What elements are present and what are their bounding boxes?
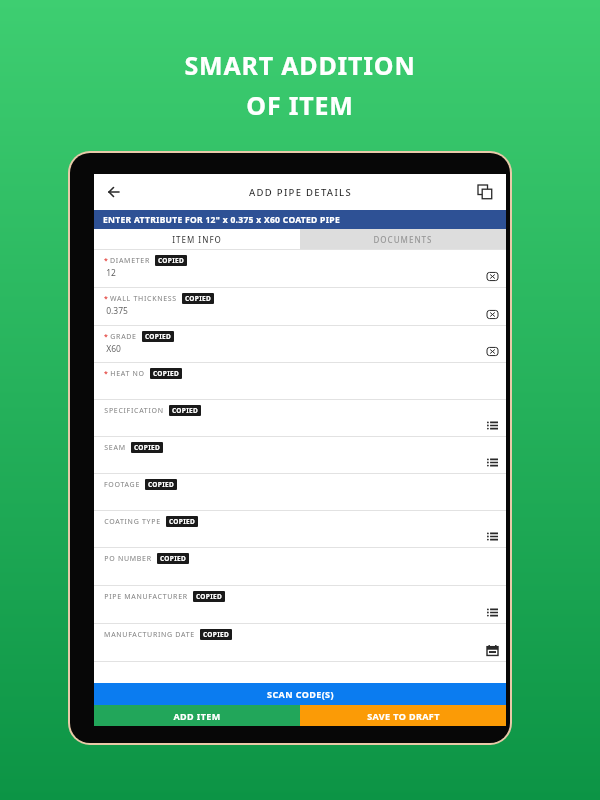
staticText: COPIED: [185, 294, 211, 303]
staticText: OF ITEM: [246, 88, 354, 122]
staticText: *: [104, 256, 108, 266]
other: Clear: [484, 306, 500, 322]
staticText: *: [104, 332, 108, 342]
other: Select: [484, 604, 500, 620]
staticText: COPIED: [148, 480, 174, 489]
other: Clear: [484, 343, 500, 359]
staticText: X60: [106, 343, 121, 355]
staticText: COPIED: [145, 332, 171, 341]
button[interactable]: ITEM INFO: [94, 229, 300, 249]
button[interactable]: *: [94, 363, 506, 400]
button[interactable]: FOOTAGE: [94, 474, 506, 511]
button[interactable]: SCAN CODE(S): [94, 683, 506, 705]
staticText: COPIED: [160, 554, 186, 563]
staticText: ADD PIPE DETAILS: [249, 186, 352, 199]
staticText: COATING TYPE: [104, 517, 161, 527]
button[interactable]: SPECIFICATION: [94, 400, 506, 437]
staticText: ADD ITEM: [173, 710, 221, 722]
button[interactable]: COATING TYPE: [94, 511, 506, 548]
staticText: MANUFACTURING DATE: [104, 630, 195, 640]
other: Select: [484, 417, 500, 433]
staticText: COPIED: [169, 517, 195, 526]
button[interactable]: *: [94, 326, 506, 363]
staticText: PO NUMBER: [104, 554, 152, 564]
staticText: SMART ADDITION: [184, 48, 416, 82]
staticText: PIPE MANUFACTURER: [104, 592, 188, 602]
staticText: COPIED: [153, 369, 179, 378]
button[interactable]: PO NUMBER: [94, 548, 506, 586]
staticText: *: [104, 369, 108, 379]
staticText: DOCUMENTS: [373, 234, 433, 245]
button[interactable]: Copy: [472, 179, 498, 205]
staticText: COPIED: [196, 592, 222, 601]
other: Select: [484, 528, 500, 544]
other: Select: [484, 454, 500, 470]
staticText: 12: [106, 267, 116, 279]
staticText: HEAT NO: [110, 369, 145, 379]
staticText: ENTER ATTRIBUTE FOR 12" x 0.375 x X60 CO…: [103, 214, 340, 226]
staticText: COPIED: [134, 443, 160, 452]
other: Pick date: [484, 642, 500, 658]
staticText: COPIED: [203, 630, 229, 639]
staticText: WALL THICKNESS: [110, 294, 177, 304]
button[interactable]: ADD ITEM: [94, 705, 300, 726]
other: Clear: [484, 268, 500, 284]
staticText: COPIED: [172, 406, 198, 415]
button[interactable]: DOCUMENTS: [300, 229, 506, 249]
staticText: SAVE TO DRAFT: [367, 710, 440, 722]
staticText: SPECIFICATION: [104, 406, 164, 416]
button[interactable]: SAVE TO DRAFT: [300, 705, 506, 726]
staticText: SEAM: [104, 443, 126, 453]
staticText: DIAMETER: [110, 256, 150, 266]
staticText: *: [104, 294, 108, 304]
button[interactable]: Back: [100, 178, 128, 206]
staticText: 0.375: [106, 305, 128, 317]
button[interactable]: MANUFACTURING DATE: [94, 624, 506, 662]
button[interactable]: SEAM: [94, 437, 506, 474]
button[interactable]: *: [94, 288, 506, 326]
button[interactable]: PIPE MANUFACTURER: [94, 586, 506, 624]
button[interactable]: *: [94, 250, 506, 288]
staticText: FOOTAGE: [104, 480, 140, 490]
staticText: SCAN CODE(S): [267, 688, 334, 700]
staticText: GRADE: [110, 332, 137, 342]
staticText: ITEM INFO: [172, 234, 222, 245]
staticText: COPIED: [158, 256, 184, 265]
